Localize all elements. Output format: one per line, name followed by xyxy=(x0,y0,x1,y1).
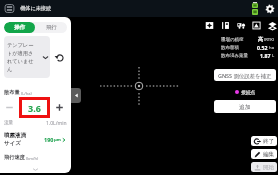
staticText: 1.87 xyxy=(260,52,271,59)
staticText: 散布済み薬量 xyxy=(221,53,249,59)
staticText: GNSS 測位誤差を補正 xyxy=(218,72,272,79)
button[interactable]: Aircraft status xyxy=(4,3,15,14)
staticText: テンプレートが適用されていません xyxy=(7,42,37,73)
button[interactable]: GNSS 測位誤差を補正 xyxy=(214,69,276,81)
button[interactable]: 噴霧液滴 サイズ xyxy=(4,132,67,147)
button[interactable]: Reset template xyxy=(55,53,65,63)
staticText: 機体に未接続 xyxy=(20,5,52,12)
staticText: ha xyxy=(268,45,275,51)
staticText: 開始 xyxy=(263,164,275,171)
button[interactable]: 飛行 xyxy=(35,22,67,33)
staticText: 終了 xyxy=(263,138,275,145)
button[interactable]: Terrain xyxy=(252,21,261,30)
button[interactable]: 追加 xyxy=(214,100,276,113)
staticText: L xyxy=(271,53,275,59)
button[interactable]: Boundary xyxy=(221,21,230,30)
staticText: 飛行速度 xyxy=(4,154,25,161)
staticText: 操作 xyxy=(14,24,25,31)
staticText: (L/ha) xyxy=(21,91,32,96)
button[interactable]: Layers xyxy=(268,21,277,30)
staticText: 圃場の精度 xyxy=(221,37,244,43)
button[interactable]: 編集 xyxy=(251,149,277,159)
button[interactable]: Settings xyxy=(265,4,275,14)
staticText: 飛行 xyxy=(46,24,57,31)
staticText: (RTK) xyxy=(264,37,275,43)
staticText: μm xyxy=(54,137,61,143)
staticText: (km/h) xyxy=(26,156,39,161)
staticText: 編集 xyxy=(263,151,275,158)
staticText: 散布量 xyxy=(4,89,20,96)
staticText: 流量 xyxy=(4,120,14,126)
staticText: 追加 xyxy=(239,103,251,110)
button[interactable]: Increase xyxy=(54,102,65,113)
button[interactable]: Obstacle xyxy=(237,21,246,30)
staticText: 高 xyxy=(258,36,264,43)
button[interactable]: 3.6 xyxy=(19,97,50,118)
staticText: 1.0L/min xyxy=(46,120,67,127)
button[interactable]: 操作 xyxy=(4,22,35,33)
button[interactable]: 開始 xyxy=(251,162,277,172)
button[interactable]: テンプレートが適用されていません xyxy=(4,36,50,78)
staticText: 散布面積 xyxy=(221,45,239,51)
button[interactable]: 終了 xyxy=(251,136,277,146)
button[interactable]: Add field xyxy=(205,21,214,30)
staticText: 190 xyxy=(44,136,54,143)
button[interactable]: Expand xyxy=(0,165,71,173)
staticText: 接続点 xyxy=(241,89,256,95)
button[interactable]: Decrease xyxy=(4,102,15,113)
staticText: 3.6 xyxy=(28,102,41,114)
button[interactable]: Collapse panel xyxy=(71,88,81,103)
staticText: 噴霧液滴 サイズ xyxy=(4,132,26,147)
staticText: 0.52 xyxy=(257,44,268,51)
